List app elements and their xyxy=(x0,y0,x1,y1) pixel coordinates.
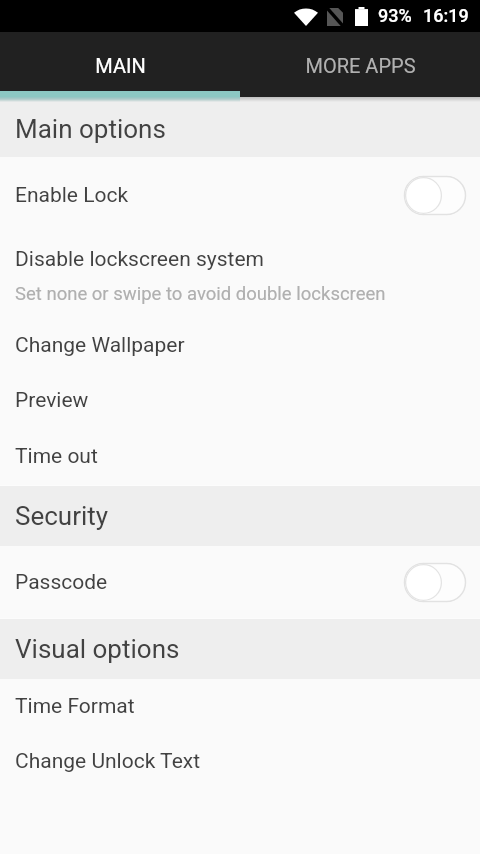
staticText: Security xyxy=(15,501,109,531)
staticText: MORE APPS xyxy=(305,54,416,77)
button[interactable]: Enable Lock xyxy=(0,157,480,233)
staticText: Set none or swipe to avoid double locksc… xyxy=(15,283,386,305)
staticText: Time out xyxy=(15,444,98,469)
button[interactable]: MORE APPS xyxy=(240,32,480,97)
button[interactable]: Enable Lock toggle xyxy=(404,176,466,215)
button[interactable]: Change Unlock Text xyxy=(0,734,480,790)
staticText: Passcode xyxy=(15,570,108,595)
button[interactable]: Disable lockscreen system xyxy=(0,233,480,318)
staticText: 16:19 xyxy=(423,5,469,26)
staticText: 93% xyxy=(378,5,412,26)
staticText: Visual options xyxy=(15,634,180,664)
staticText: Change Unlock Text xyxy=(15,749,201,774)
button[interactable]: Time Format xyxy=(0,679,480,734)
button[interactable]: Change Wallpaper xyxy=(0,318,480,374)
staticText: MAIN xyxy=(95,54,146,77)
staticText: Time Format xyxy=(15,694,135,719)
button[interactable]: Preview xyxy=(0,374,480,429)
staticText: Main options xyxy=(15,114,166,144)
staticText: Disable lockscreen system xyxy=(15,247,264,272)
staticText: Preview xyxy=(15,388,89,413)
button[interactable]: Passcode toggle xyxy=(404,563,466,602)
button[interactable]: Passcode xyxy=(0,546,480,618)
button[interactable]: MAIN xyxy=(0,32,240,97)
staticText: Enable Lock xyxy=(15,183,129,208)
staticText: Change Wallpaper xyxy=(15,333,185,358)
button[interactable]: Time out xyxy=(0,429,480,485)
